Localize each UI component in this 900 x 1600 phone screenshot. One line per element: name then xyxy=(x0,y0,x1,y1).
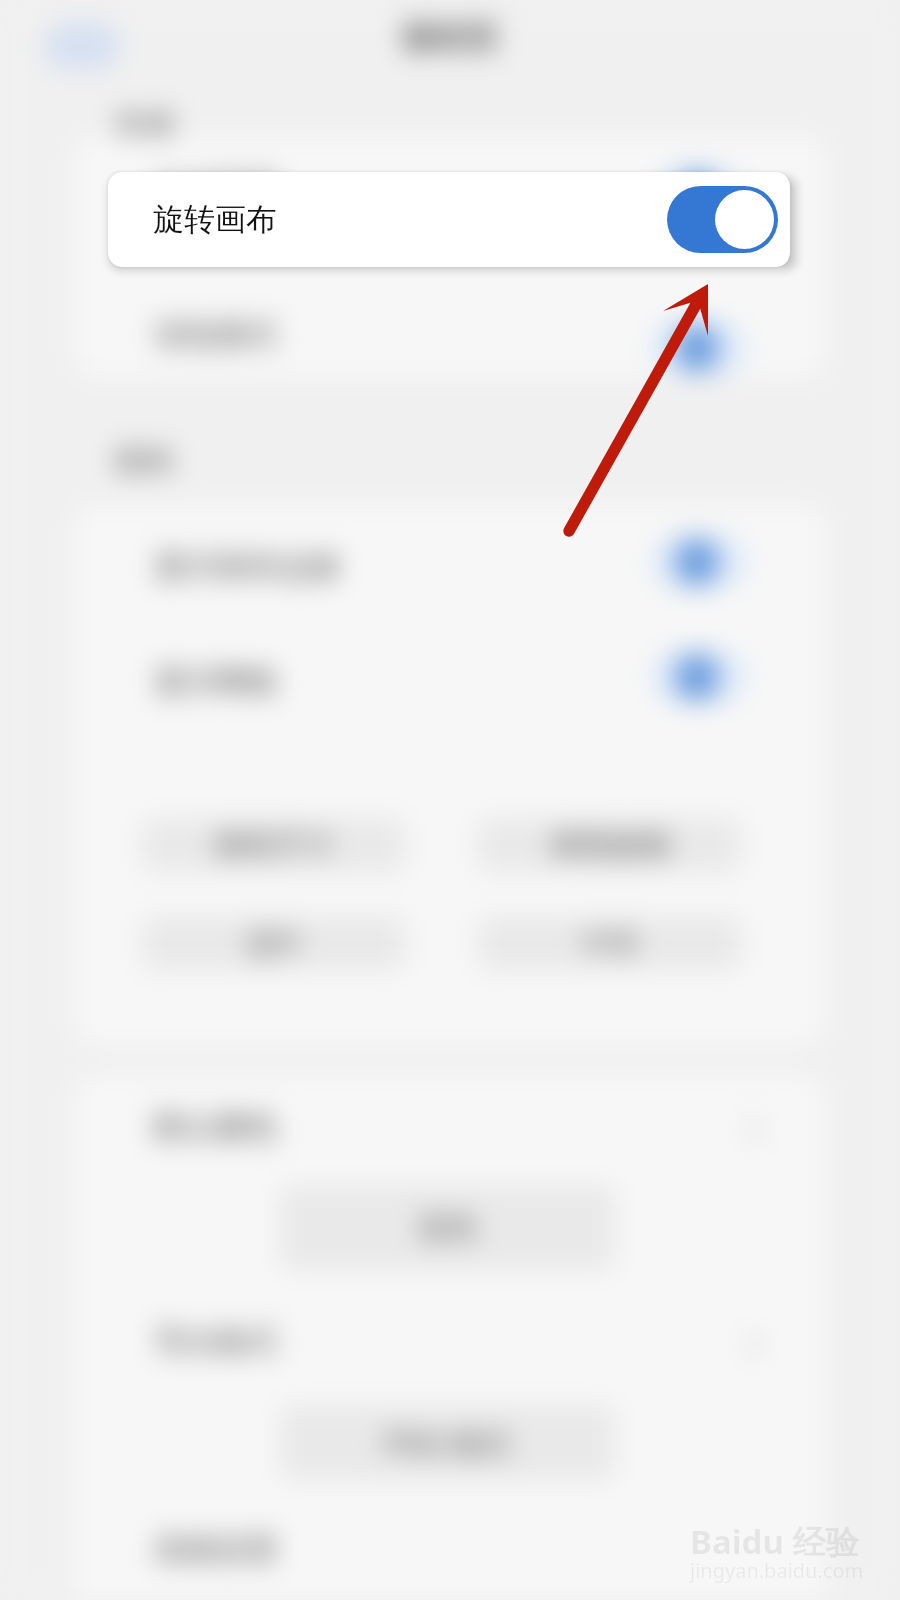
button[interactable]: 画笔粗细 xyxy=(478,818,741,872)
button[interactable]: 适中 xyxy=(142,916,405,970)
staticText: 导出格式 xyxy=(154,1322,278,1361)
button[interactable]: Back xyxy=(47,24,117,68)
button[interactable]: 中等 xyxy=(478,916,741,970)
staticText: 常规 xyxy=(115,107,175,145)
button[interactable]: 导出格式 xyxy=(74,1322,826,1394)
button[interactable]: 默认颜色 xyxy=(74,1107,826,1179)
button[interactable]: 蓝色 xyxy=(280,1185,615,1270)
button[interactable]: PNG 格式 xyxy=(280,1405,615,1480)
staticText: 深色模式 xyxy=(154,315,278,354)
staticText: 画布尺寸 xyxy=(214,826,334,864)
button[interactable]: 深色模式 xyxy=(74,240,826,378)
other: Annotation arrow xyxy=(0,0,900,1600)
staticText: 画笔粗细 xyxy=(550,826,670,864)
button[interactable]: 高级设置 xyxy=(74,1515,826,1595)
staticText: 显示画布边缘 xyxy=(154,547,340,586)
staticText: 适中 xyxy=(246,926,302,961)
button[interactable]: 自动亮度 xyxy=(74,136,826,240)
button[interactable]: 显示网格 xyxy=(74,622,826,737)
staticText: 中等 xyxy=(582,926,638,961)
staticText: 高级设置 xyxy=(154,1530,278,1569)
button[interactable]: 旋转画布 xyxy=(108,172,790,267)
button[interactable]: Rotate canvas, on xyxy=(667,186,778,253)
staticText: 画布 xyxy=(114,442,174,480)
staticText: 显示网格 xyxy=(154,662,278,701)
staticText: 自动亮度 xyxy=(154,170,278,209)
staticText: 画布页 xyxy=(0,18,900,58)
staticText: Baidu 经验 xyxy=(690,1519,859,1564)
staticText: jingyan.baidu.com xyxy=(690,1557,864,1584)
staticText: PNG 格式 xyxy=(384,1423,511,1463)
button[interactable]: 显示画布边缘 xyxy=(74,505,826,622)
staticText: 旋转画布 xyxy=(153,200,277,239)
staticText: 蓝色 xyxy=(419,1209,477,1246)
staticText: 默认颜色 xyxy=(154,1107,278,1146)
button[interactable]: 画布尺寸 xyxy=(142,818,405,872)
